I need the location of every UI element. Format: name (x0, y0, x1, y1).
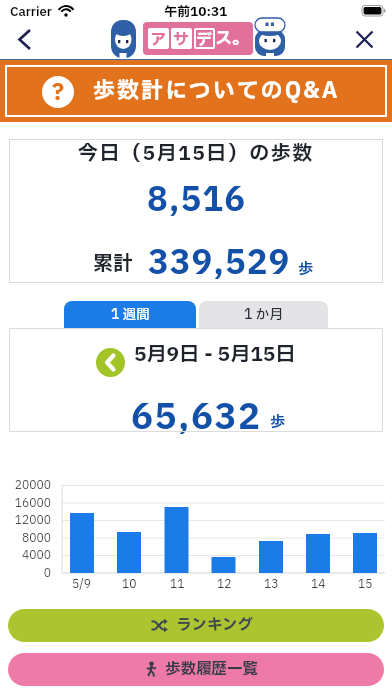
staticText: 339,529 (148, 239, 291, 288)
staticText: 歩数計についてのQ&A (93, 75, 340, 108)
staticText: 10 (122, 576, 137, 593)
button[interactable]: ランキング (8, 609, 384, 642)
staticText: 20000 (0, 477, 51, 494)
staticText: デ (196, 28, 213, 49)
staticText: 65,632 (131, 392, 262, 444)
staticText: 4000 (0, 547, 51, 564)
button[interactable] (350, 24, 380, 54)
staticText: 8,516 (147, 176, 246, 225)
button[interactable]: 1 か月 (199, 301, 328, 328)
staticText: 1 か月 (244, 305, 283, 325)
button[interactable]: ? (0, 60, 392, 122)
staticText: ランキング (176, 614, 254, 637)
button[interactable] (8, 24, 38, 54)
staticText: 5月9日 - 5月15日 (134, 340, 296, 370)
staticText: ? (52, 76, 65, 108)
staticText: 1 週間 (111, 305, 150, 325)
staticText: 歩数履歴一覧 (165, 658, 259, 681)
staticText: 12000 (0, 512, 51, 529)
staticText: 15 (358, 576, 373, 593)
button[interactable] (96, 348, 125, 377)
staticText: 8000 (0, 530, 51, 547)
staticText: 12 (217, 576, 232, 593)
staticText: サ (173, 28, 190, 49)
button[interactable]: 歩数履歴一覧 (8, 653, 384, 686)
button[interactable]: 1 週間 (64, 301, 196, 328)
staticText: 13 (264, 576, 279, 593)
staticText: 5/9 (72, 576, 92, 593)
staticText: 歩 (270, 411, 286, 433)
staticText: 歩 (298, 258, 314, 280)
staticText: 14 (311, 576, 326, 593)
staticText: 0 (0, 565, 51, 582)
staticText: Carrier (10, 3, 52, 22)
staticText: 累計 (93, 249, 133, 279)
staticText: 16000 (0, 495, 51, 512)
staticText: ア (150, 28, 167, 49)
button[interactable]: ア (143, 22, 253, 55)
staticText: 11 (170, 576, 185, 593)
staticText: 午前10:31 (164, 2, 228, 21)
staticText: ス。 (215, 26, 249, 51)
staticText: 今日（5月15日）の歩数 (78, 139, 314, 169)
